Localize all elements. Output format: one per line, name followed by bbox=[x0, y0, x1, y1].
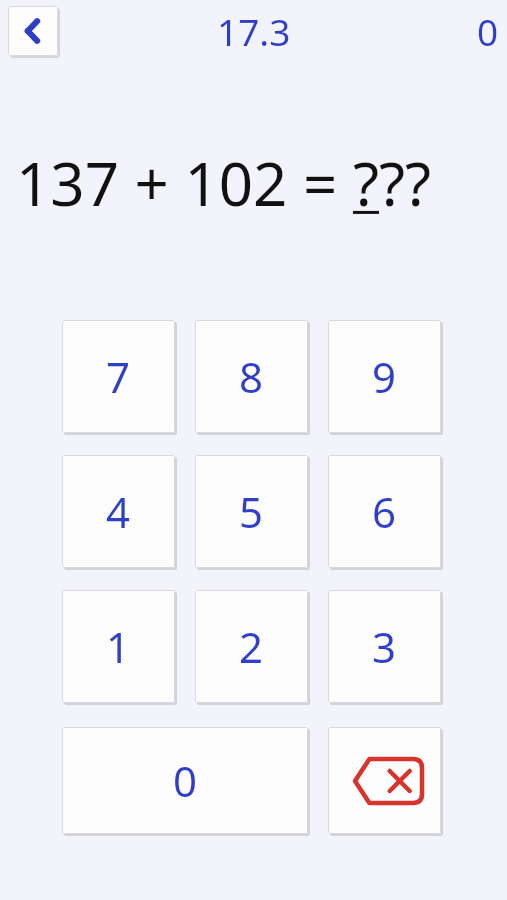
staticText: 8 bbox=[239, 348, 264, 405]
button[interactable]: 4 bbox=[62, 455, 175, 568]
button[interactable]: 7 bbox=[62, 320, 175, 433]
staticText: 17.3 bbox=[217, 6, 291, 56]
button[interactable]: 2 bbox=[195, 590, 308, 703]
button[interactable]: 1 bbox=[62, 590, 175, 703]
staticText: 137 + 102 = ??? bbox=[16, 142, 432, 224]
button[interactable]: 9 bbox=[328, 320, 441, 433]
button[interactable]: 6 bbox=[328, 455, 441, 568]
button[interactable]: 5 bbox=[195, 455, 308, 568]
button[interactable]: Back bbox=[8, 6, 58, 56]
staticText: 4 bbox=[106, 483, 131, 540]
staticText: 2 bbox=[239, 618, 264, 675]
staticText: 0 bbox=[173, 752, 198, 809]
staticText: 5 bbox=[239, 483, 264, 540]
button[interactable]: 0 bbox=[62, 727, 308, 834]
staticText: 1 bbox=[106, 618, 131, 675]
button[interactable]: 3 bbox=[328, 590, 441, 703]
button[interactable]: 8 bbox=[195, 320, 308, 433]
button[interactable]: Backspace bbox=[328, 727, 441, 834]
staticText: 9 bbox=[372, 348, 397, 405]
staticText: 0 bbox=[477, 6, 499, 56]
staticText: 6 bbox=[372, 483, 397, 540]
staticText: 3 bbox=[372, 618, 397, 675]
staticText: 7 bbox=[106, 348, 131, 405]
